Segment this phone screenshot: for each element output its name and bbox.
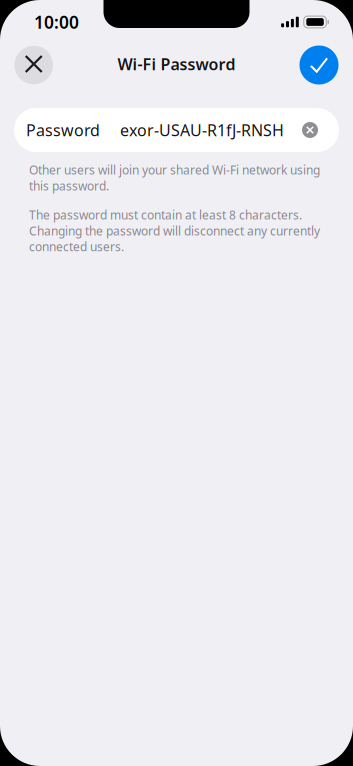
staticText: Other users will join your shared Wi-Fi … — [29, 162, 320, 194]
staticText: exor-USAU-R1fJ-RNSH — [120, 119, 284, 141]
staticText: Password — [26, 119, 100, 141]
button[interactable]: Password — [14, 108, 339, 152]
button[interactable]: Clear text — [302, 122, 318, 138]
staticText: 10:00 — [34, 10, 79, 33]
button[interactable]: Save password — [299, 45, 338, 84]
staticText: Wi-Fi Password — [117, 53, 235, 75]
staticText: The password must contain at least 8 cha… — [29, 207, 320, 255]
button[interactable]: Close — [14, 46, 53, 84]
